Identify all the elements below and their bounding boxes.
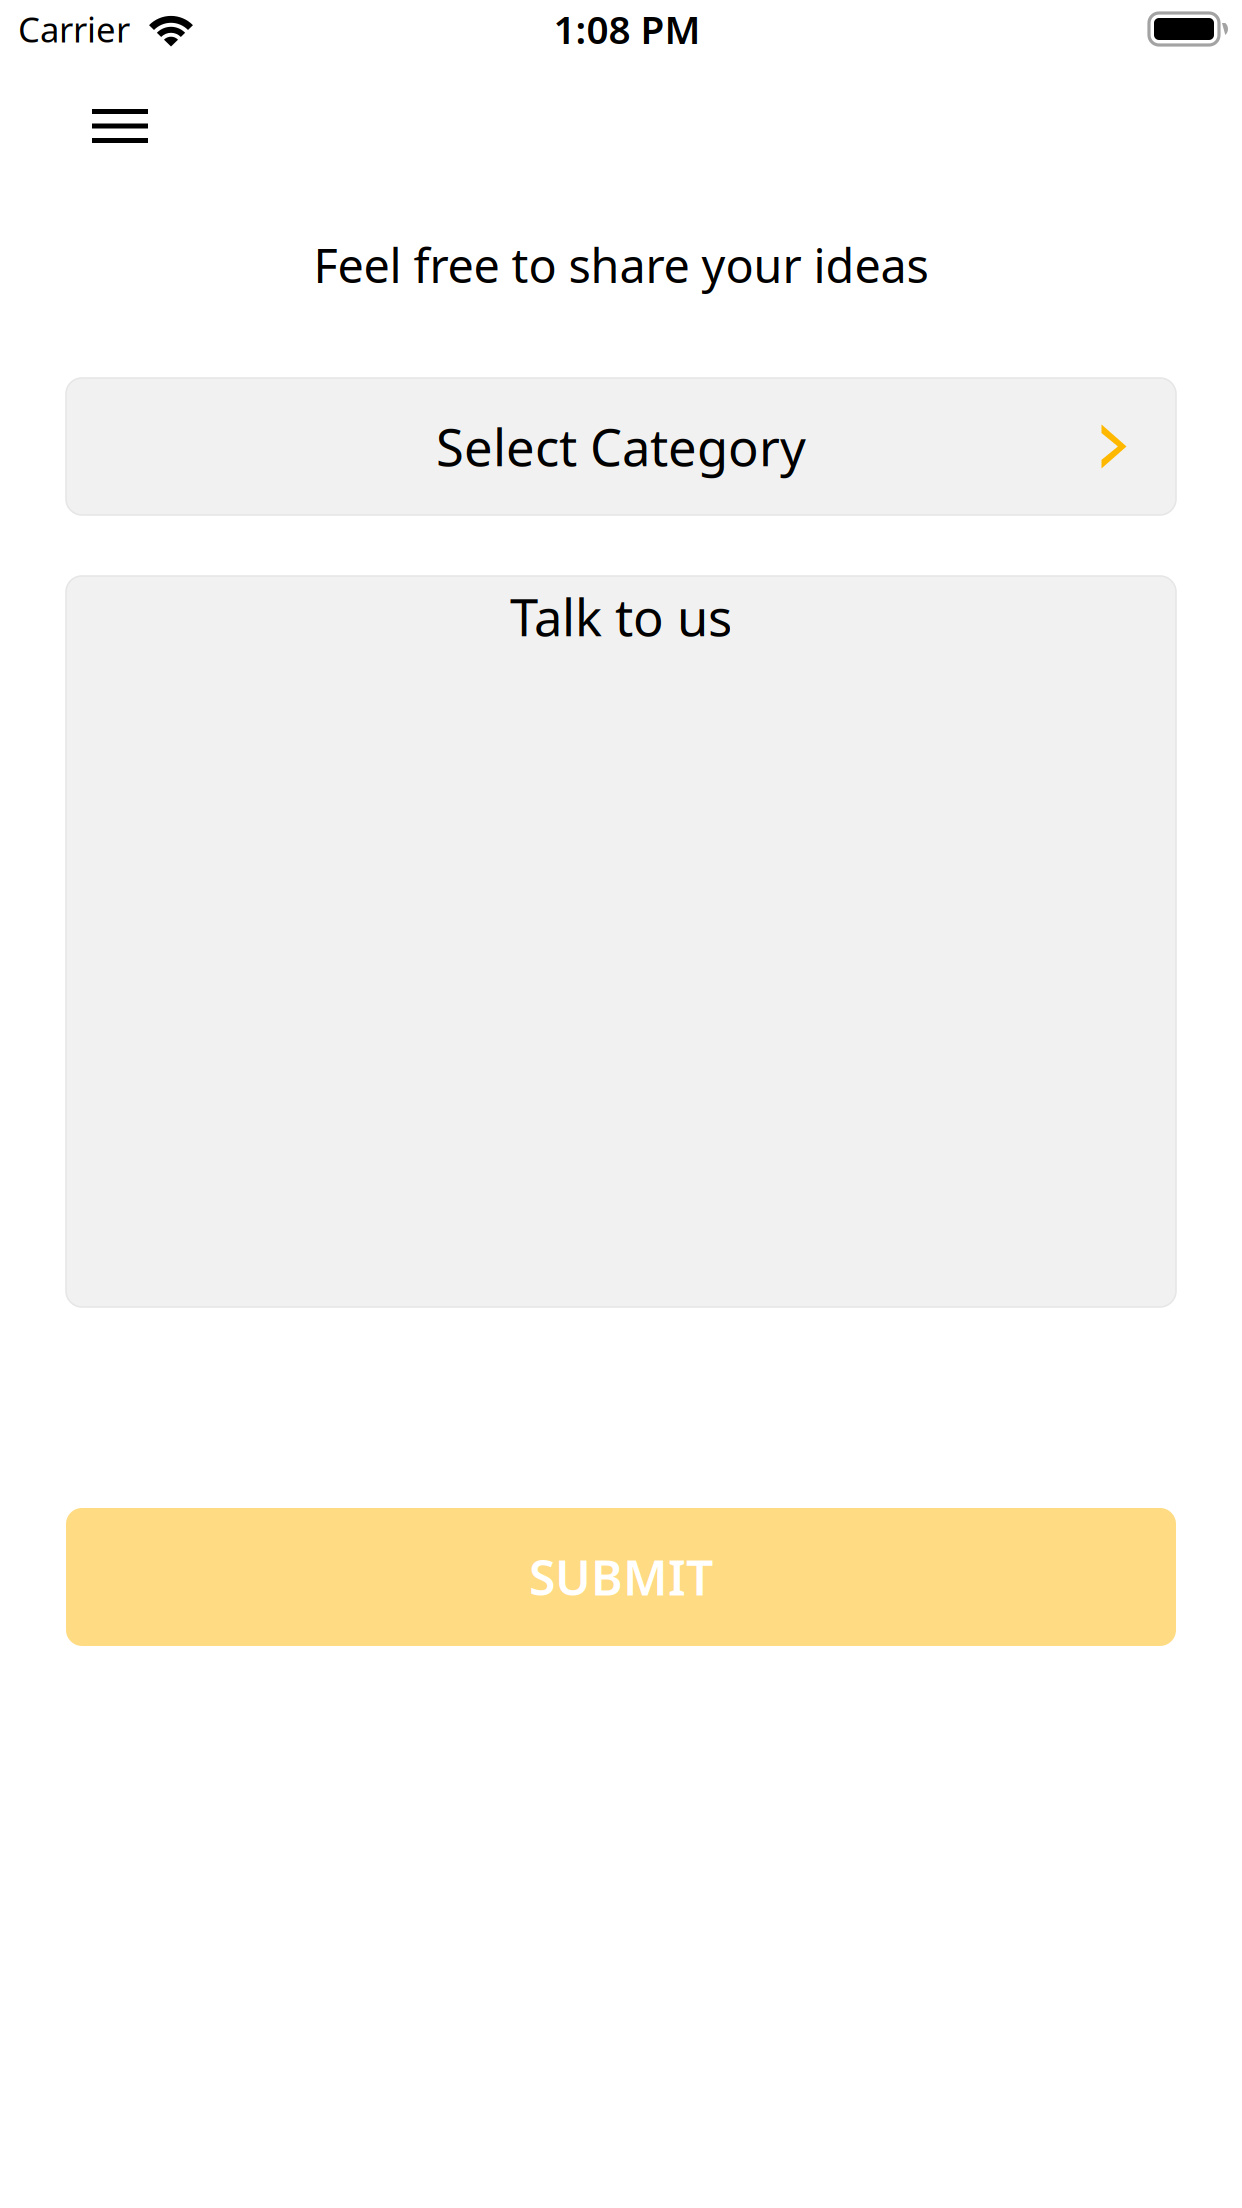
staticText: Carrier — [18, 6, 130, 52]
staticText: Feel free to share your ideas — [313, 234, 928, 296]
button[interactable]: SUBMIT — [66, 1508, 1176, 1646]
staticText: 1:08 PM — [553, 3, 700, 55]
staticText: Talk to us — [510, 583, 732, 650]
staticText: Select Category — [436, 413, 806, 480]
button[interactable]: Select Category — [66, 378, 1176, 515]
button[interactable]: Menu — [0, 58, 188, 187]
staticText: SUBMIT — [529, 1545, 713, 1609]
button[interactable]: Talk to us — [66, 576, 1176, 1307]
